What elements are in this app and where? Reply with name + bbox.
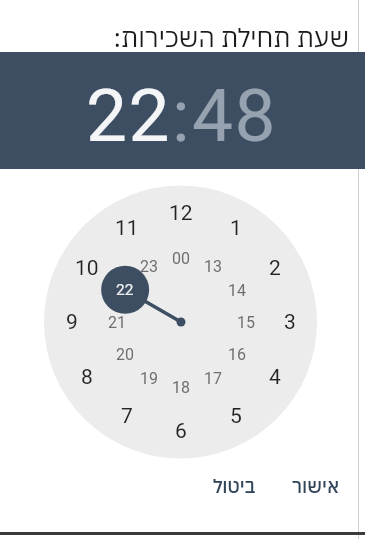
button[interactable]: 00	[161, 244, 201, 272]
staticText: 22	[116, 281, 134, 299]
staticText: 3	[284, 310, 296, 335]
staticText: 6	[175, 419, 187, 444]
staticText: :	[172, 73, 192, 159]
button[interactable]: ביטול	[213, 474, 256, 499]
staticText: 10	[75, 256, 99, 281]
button[interactable]: 19	[129, 364, 169, 392]
staticText: 5	[230, 404, 242, 429]
staticText: 14	[228, 281, 246, 300]
staticText: שעת תחילת השכירות:	[113, 20, 349, 54]
button[interactable]: 5	[216, 402, 256, 430]
staticText: 23	[140, 257, 158, 276]
staticText: 8	[81, 365, 93, 390]
button[interactable]: 16	[217, 340, 257, 368]
button[interactable]: 10	[67, 254, 107, 282]
button[interactable]: 15	[226, 308, 266, 336]
staticText: אישור	[292, 474, 340, 499]
staticText: ביטול	[213, 474, 256, 499]
staticText: 2	[269, 256, 281, 281]
staticText: 11	[115, 216, 139, 241]
staticText: 13	[204, 257, 222, 276]
button[interactable]: 23	[129, 252, 169, 280]
staticText: 9	[66, 310, 78, 335]
staticText: 12	[169, 201, 193, 226]
button[interactable]: 4	[255, 363, 295, 391]
button[interactable]: 2	[255, 254, 295, 282]
button[interactable]: 12	[161, 199, 201, 227]
button[interactable]: 3	[270, 308, 310, 336]
staticText: 1	[230, 216, 242, 241]
button[interactable]: 6	[161, 417, 201, 445]
staticText: 16	[228, 345, 246, 364]
button[interactable]: 17	[193, 364, 233, 392]
button[interactable]: 22	[105, 276, 145, 304]
button[interactable]: 7	[107, 402, 147, 430]
button[interactable]: 21	[97, 308, 137, 336]
button[interactable]: 14	[217, 276, 257, 304]
staticText: 15	[237, 313, 255, 332]
button[interactable]: 8	[67, 363, 107, 391]
staticText: 21	[108, 313, 126, 332]
button[interactable]: 13	[193, 252, 233, 280]
staticText: 4	[269, 365, 281, 390]
button[interactable]: 11	[107, 214, 147, 242]
button[interactable]: 22	[86, 73, 172, 159]
staticText: 17	[204, 369, 222, 388]
button[interactable]: 1	[216, 214, 256, 242]
staticText: 18	[172, 378, 190, 397]
button[interactable]: 48	[192, 73, 278, 159]
staticText: 00	[172, 249, 190, 268]
staticText: 19	[140, 369, 158, 388]
button[interactable]: 18	[161, 373, 201, 401]
staticText: 7	[121, 404, 133, 429]
button[interactable]: 20	[105, 340, 145, 368]
staticText: 20	[116, 345, 134, 364]
button[interactable]: 9	[52, 308, 92, 336]
button[interactable]: אישור	[292, 474, 340, 499]
